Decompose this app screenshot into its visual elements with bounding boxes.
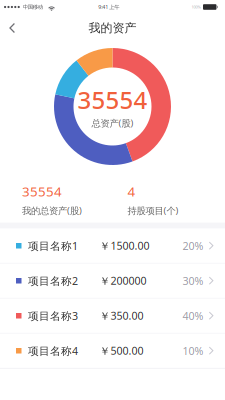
staticText: 持股项目(个)	[127, 204, 178, 217]
button[interactable]: Back	[0, 14, 27, 42]
staticText: ￥350.00	[99, 309, 143, 323]
staticText: ￥200000	[99, 274, 146, 288]
staticText: 30%	[182, 274, 203, 288]
staticText: ￥500.00	[99, 344, 143, 358]
staticText: 项目名称4	[28, 344, 78, 358]
staticText: ￥1500.00	[99, 239, 149, 253]
staticText: 35554	[22, 182, 62, 200]
staticText: 20%	[182, 239, 203, 253]
staticText: 我的资产	[88, 21, 136, 35]
staticText: 项目名称3	[28, 309, 78, 323]
staticText: 4	[127, 182, 135, 200]
staticText: 35554	[77, 84, 147, 116]
staticText: 中国移动	[23, 4, 43, 10]
staticText: 40%	[182, 309, 203, 323]
staticText: 项目名称1	[28, 239, 78, 253]
staticText: 100%	[191, 4, 200, 10]
button[interactable]: 项目名称4	[0, 334, 225, 368]
staticText: 我的总资产(股)	[22, 204, 82, 217]
staticText: 9:41 上午	[98, 3, 119, 11]
staticText: 总资产(股)	[91, 117, 133, 129]
staticText: 项目名称2	[28, 274, 78, 288]
button[interactable]: 项目名称2	[0, 264, 225, 298]
button[interactable]: 项目名称1	[0, 229, 225, 263]
staticText: 10%	[182, 344, 203, 358]
button[interactable]: 项目名称3	[0, 299, 225, 333]
